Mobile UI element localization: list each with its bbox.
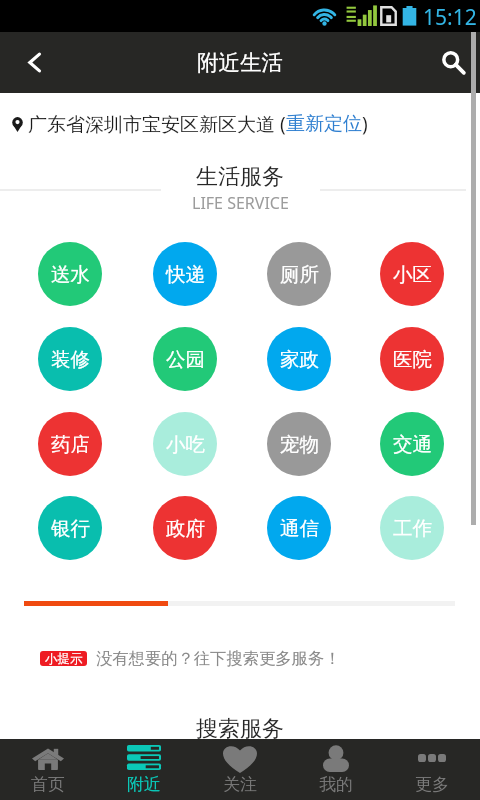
button[interactable]: 广东省深圳市宝安区新区大道 ( (12, 111, 368, 137)
staticText: 更多 (415, 774, 449, 795)
staticText: 宠物 (280, 432, 319, 457)
staticText: 银行 (51, 516, 90, 541)
staticText: 政府 (166, 516, 205, 541)
staticText: 生活服务 (196, 163, 284, 189)
button[interactable]: 银行 (38, 496, 102, 560)
button[interactable]: 更多 (384, 739, 480, 800)
staticText: 通信 (280, 516, 319, 541)
staticText: 15:12 (423, 3, 477, 32)
button[interactable]: 快递 (153, 242, 217, 306)
staticText: 搜索服务 (196, 715, 284, 741)
button[interactable]: 附近 (96, 739, 192, 800)
staticText: 公园 (166, 347, 205, 372)
button[interactable]: 厕所 (267, 242, 331, 306)
button[interactable]: 装修 (38, 327, 102, 391)
staticText: 附近 (127, 774, 161, 795)
staticText: 小吃 (166, 432, 205, 457)
button[interactable]: 通信 (267, 496, 331, 560)
button[interactable]: 药店 (38, 412, 102, 476)
button[interactable]: 首页 (0, 739, 96, 800)
button[interactable]: 公园 (153, 327, 217, 391)
staticText: 厕所 (280, 262, 319, 287)
staticText: 药店 (51, 432, 90, 457)
button[interactable]: 小吃 (153, 412, 217, 476)
button[interactable]: 政府 (153, 496, 217, 560)
button[interactable]: 医院 (380, 327, 444, 391)
button[interactable]: 宠物 (267, 412, 331, 476)
staticText: 交通 (393, 432, 432, 457)
staticText: 关注 (223, 774, 257, 795)
staticText: 小提示 (45, 651, 83, 666)
staticText: 没有想要的？往下搜索更多服务！ (96, 648, 341, 669)
staticText: 首页 (31, 774, 65, 795)
staticText: 工作 (393, 516, 432, 541)
staticText: 广东省深圳市宝安区新区大道 ( (28, 111, 286, 137)
staticText: 附近生活 (197, 49, 283, 76)
button[interactable]: Back (0, 32, 62, 93)
button[interactable]: 交通 (380, 412, 444, 476)
staticText: 家政 (280, 347, 319, 372)
button[interactable]: 送水 (38, 242, 102, 306)
button[interactable]: 关注 (192, 739, 288, 800)
staticText: LIFE SERVICE (192, 192, 289, 214)
staticText: 小区 (393, 262, 432, 287)
button[interactable]: 家政 (267, 327, 331, 391)
button[interactable]: 小区 (380, 242, 444, 306)
button[interactable]: Search (426, 32, 480, 93)
staticText: 装修 (51, 347, 90, 372)
staticText: 我的 (319, 774, 353, 795)
staticText: ) (362, 111, 368, 137)
staticText: 快递 (166, 262, 205, 287)
button[interactable]: 我的 (288, 739, 384, 800)
button[interactable]: 工作 (380, 496, 444, 560)
staticText: 医院 (393, 347, 432, 372)
staticText: 送水 (51, 262, 90, 287)
staticText: 重新定位 (286, 112, 362, 136)
